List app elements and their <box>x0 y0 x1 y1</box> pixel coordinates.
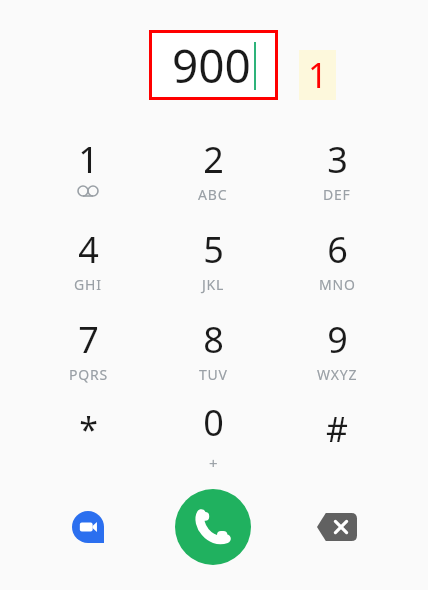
button[interactable]: 0 <box>158 398 268 478</box>
button[interactable]: 3 <box>282 135 392 215</box>
staticText: MNO <box>319 275 356 294</box>
staticText: 4 <box>78 225 99 274</box>
button[interactable]: 9 <box>282 315 392 395</box>
staticText: 8 <box>203 315 224 364</box>
staticText: JKL <box>202 275 225 294</box>
button[interactable]: 2 <box>158 135 268 215</box>
staticText: 1 <box>78 135 99 184</box>
staticText: 7 <box>78 315 99 364</box>
staticText: ABC <box>198 185 228 204</box>
button[interactable]: Video call <box>68 507 108 547</box>
button[interactable]: 1 <box>33 135 143 215</box>
button[interactable]: * <box>33 398 143 478</box>
staticText: 0 <box>203 398 224 447</box>
staticText: 5 <box>203 225 224 274</box>
staticText: 900 <box>172 34 251 97</box>
staticText: 3 <box>327 135 348 184</box>
button[interactable]: 8 <box>158 315 268 395</box>
button[interactable]: 7 <box>33 315 143 395</box>
staticText: # <box>326 406 348 452</box>
button[interactable]: 6 <box>282 225 392 305</box>
staticText: PQRS <box>69 365 108 384</box>
staticText: TUV <box>199 365 228 384</box>
button[interactable]: 5 <box>158 225 268 305</box>
button[interactable]: # <box>282 398 392 478</box>
button[interactable]: Call <box>175 489 251 565</box>
button[interactable]: 900 <box>149 30 278 100</box>
staticText: DEF <box>323 185 351 204</box>
button[interactable]: 4 <box>33 225 143 305</box>
staticText: * <box>79 406 98 452</box>
staticText: + <box>209 453 219 473</box>
staticText: 9 <box>327 315 348 364</box>
staticText: 2 <box>203 135 224 184</box>
staticText: 1 <box>308 52 328 98</box>
button[interactable]: Backspace <box>317 513 357 541</box>
staticText: WXYZ <box>317 365 358 384</box>
staticText: GHI <box>74 275 102 294</box>
staticText: 6 <box>327 225 348 274</box>
